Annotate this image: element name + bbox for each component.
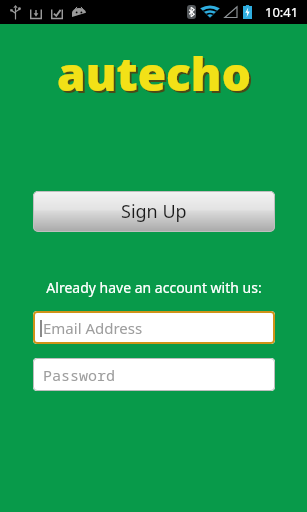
staticText: Email Address: [43, 318, 143, 338]
button[interactable]: Password: [33, 358, 275, 391]
staticText: 10:41: [265, 3, 299, 21]
button[interactable]: Email Address: [33, 311, 275, 344]
staticText: Sign Up: [121, 199, 187, 224]
staticText: autecho: [57, 42, 251, 105]
staticText: autecho: [59, 44, 253, 107]
button[interactable]: Sign Up: [33, 191, 275, 232]
staticText: Password: [43, 365, 116, 385]
staticText: Already have an account with us:: [46, 278, 262, 297]
